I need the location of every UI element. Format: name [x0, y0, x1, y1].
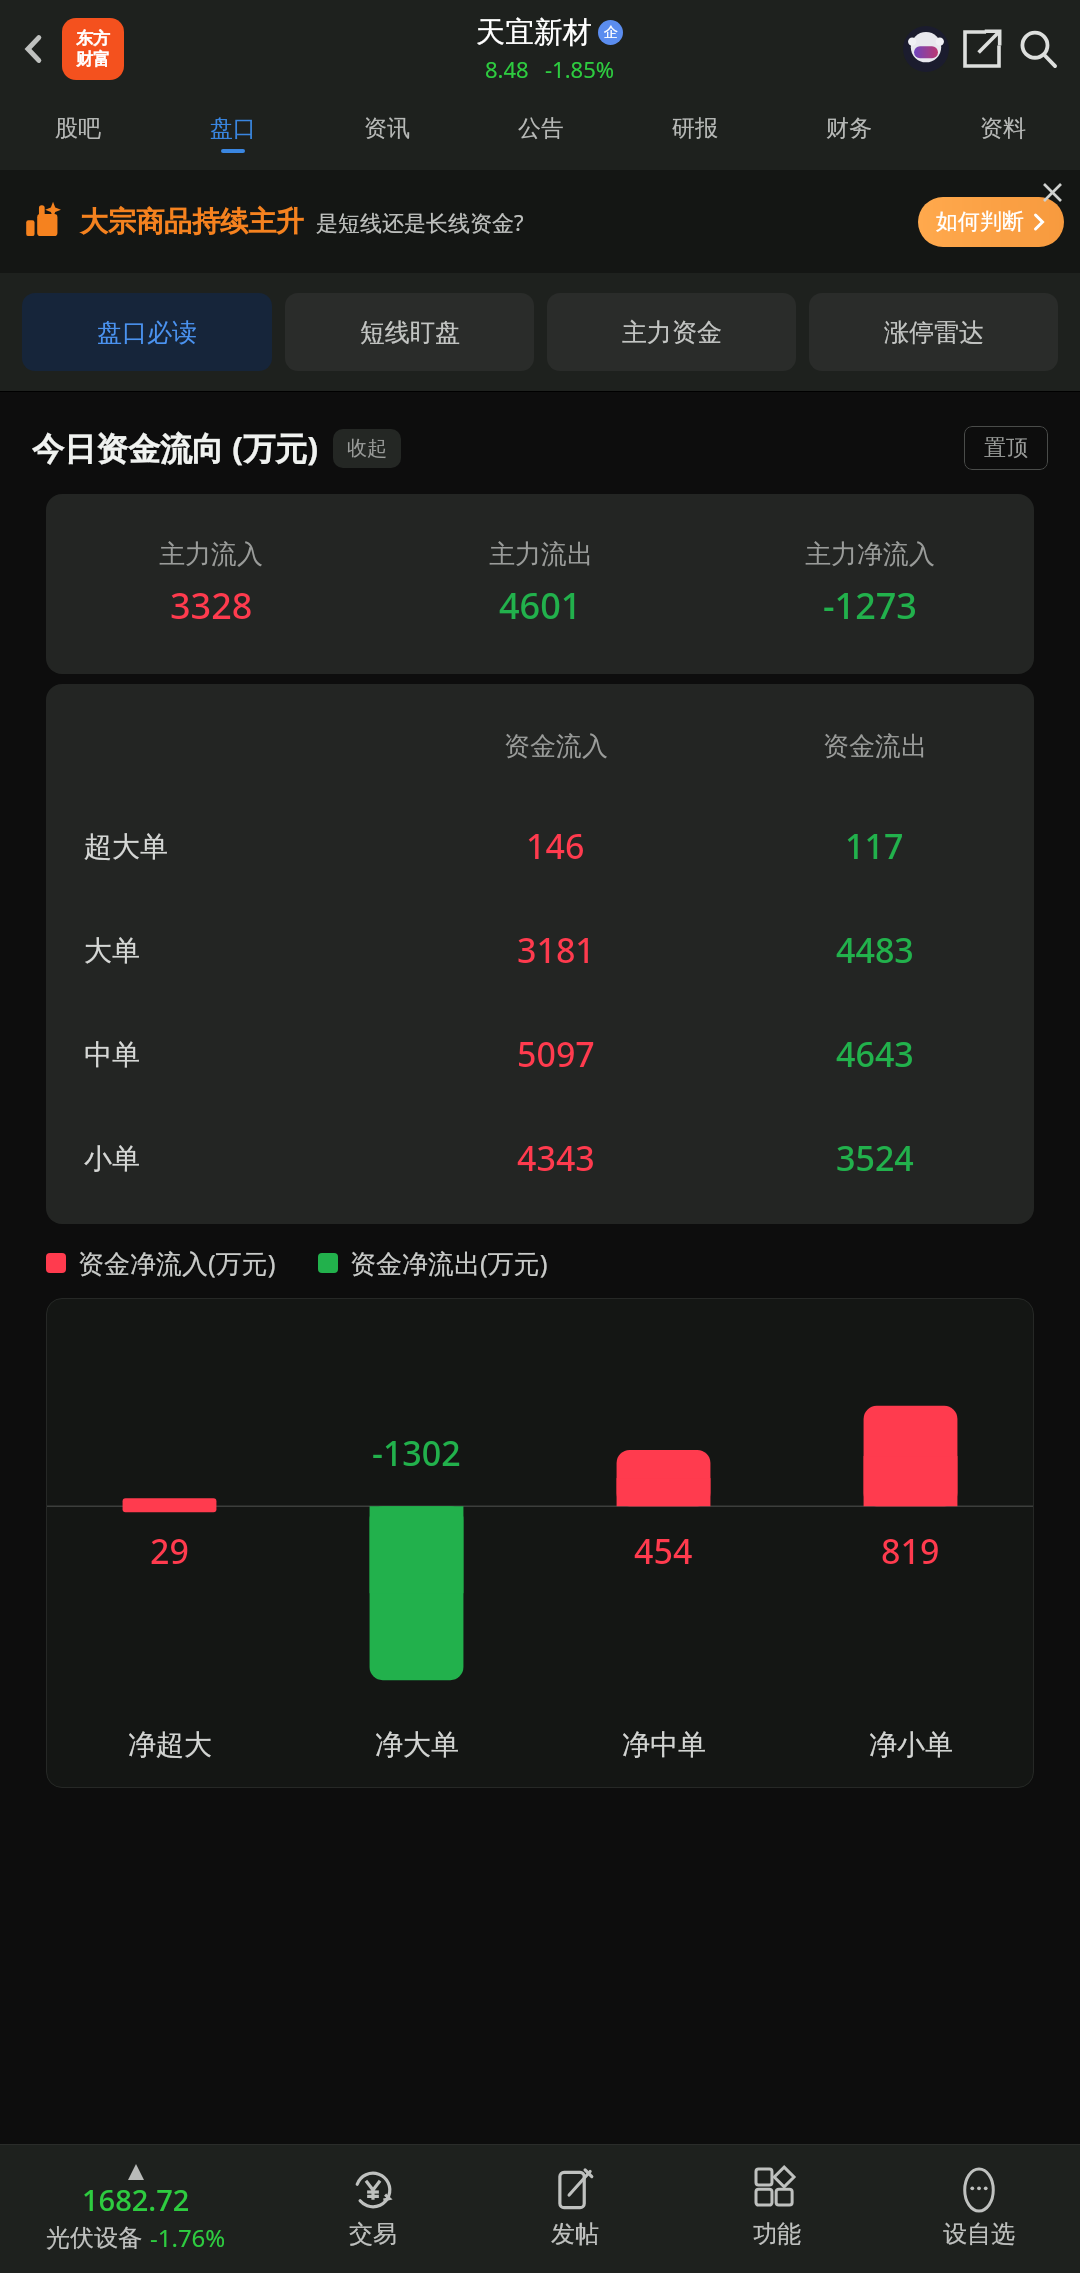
- staticText: 8.48: [485, 54, 529, 84]
- staticText: 净中单: [622, 1727, 706, 1762]
- staticText: -1.76%: [150, 2221, 226, 2254]
- staticText: 146: [526, 823, 585, 869]
- staticText: 资讯: [364, 114, 410, 143]
- staticText: 主力流出: [489, 538, 593, 571]
- staticText: 大单: [84, 933, 140, 968]
- button[interactable]: 盘口必读: [22, 293, 272, 371]
- button[interactable]: 设自选: [878, 2145, 1080, 2273]
- button[interactable]: 交易: [272, 2145, 474, 2273]
- staticText: 5097: [517, 1031, 595, 1077]
- button[interactable]: Back: [6, 21, 62, 77]
- staticText: 是短线还是长线资金?: [316, 207, 524, 237]
- staticText: 盘口必读: [97, 317, 197, 348]
- staticText: 净大单: [375, 1727, 459, 1762]
- button[interactable]: Search: [1010, 21, 1066, 77]
- staticText: 东方: [76, 28, 110, 49]
- button[interactable]: 涨停雷达: [809, 293, 1058, 371]
- button[interactable]: AI assistant: [898, 21, 954, 77]
- staticText: 超大单: [84, 829, 168, 864]
- staticText: 今日资金流向 (万元): [32, 426, 319, 470]
- staticText: 4483: [836, 927, 914, 973]
- staticText: 净小单: [869, 1727, 953, 1762]
- button[interactable]: Close ad: [1032, 172, 1072, 212]
- button[interactable]: 研报: [618, 97, 772, 170]
- button[interactable]: 收起: [333, 429, 401, 468]
- staticText: 财富: [76, 49, 110, 70]
- staticText: 财务: [826, 114, 872, 143]
- staticText: 研报: [672, 114, 718, 143]
- staticText: 设自选: [943, 2219, 1015, 2249]
- staticText: 短线盯盘: [360, 317, 460, 348]
- staticText: 中单: [84, 1037, 140, 1072]
- button[interactable]: 1682.72: [0, 2145, 272, 2273]
- staticText: 企: [604, 24, 618, 42]
- staticText: 盘口: [210, 114, 256, 143]
- staticText: 如何判断: [936, 208, 1024, 236]
- staticText: 大宗商品持续主升: [80, 204, 304, 239]
- button[interactable]: 发帖: [474, 2145, 676, 2273]
- staticText: 4343: [517, 1135, 595, 1181]
- button[interactable]: -1302: [46, 1298, 1034, 1788]
- staticText: 1682.72: [82, 2180, 190, 2219]
- button[interactable]: Share: [954, 21, 1010, 77]
- staticText: 4643: [836, 1031, 914, 1077]
- staticText: 资金流出: [823, 730, 927, 763]
- staticText: 主力流入: [159, 538, 263, 571]
- staticText: 收起: [347, 436, 387, 461]
- staticText: 资金流入: [504, 730, 608, 763]
- staticText: 净超大: [128, 1727, 212, 1762]
- staticText: 置顶: [984, 434, 1028, 462]
- button[interactable]: 东方财富: [62, 18, 124, 80]
- button[interactable]: 公告: [464, 97, 618, 170]
- button[interactable]: 短线盯盘: [285, 293, 534, 371]
- button[interactable]: 资讯: [310, 97, 464, 170]
- button[interactable]: 资料: [926, 97, 1080, 170]
- staticText: 主力净流入: [805, 538, 935, 571]
- staticText: 资料: [980, 114, 1026, 143]
- staticText: 3524: [836, 1135, 914, 1181]
- staticText: 公告: [518, 114, 564, 143]
- button[interactable]: 盘口: [155, 97, 310, 170]
- staticText: 功能: [753, 2219, 801, 2249]
- button[interactable]: 股吧: [0, 97, 155, 170]
- staticText: 3181: [517, 927, 595, 973]
- staticText: -1.85%: [545, 54, 615, 84]
- button[interactable]: 置顶: [964, 426, 1048, 470]
- button[interactable]: 主力资金: [547, 293, 796, 371]
- button[interactable]: 主力流入: [46, 494, 1034, 674]
- staticText: 涨停雷达: [884, 317, 984, 348]
- staticText: 资金净流出(万元): [350, 1245, 548, 1281]
- button[interactable]: 财务: [772, 97, 926, 170]
- button[interactable]: 资金流入: [46, 684, 1034, 1224]
- staticText: 天宜新材: [476, 14, 592, 51]
- staticText: 交易: [349, 2219, 397, 2249]
- staticText: 4601: [499, 581, 582, 630]
- staticText: 819: [881, 1528, 940, 1574]
- staticText: 股吧: [55, 114, 101, 143]
- staticText: 3328: [170, 581, 253, 630]
- staticText: 454: [634, 1528, 693, 1574]
- staticText: -1302: [372, 1430, 461, 1476]
- staticText: 资金净流入(万元): [78, 1245, 276, 1281]
- staticText: -1273: [823, 581, 917, 630]
- staticText: 光伏设备: [46, 2223, 142, 2253]
- staticText: 主力资金: [622, 317, 722, 348]
- button[interactable]: 功能: [676, 2145, 878, 2273]
- button[interactable]: 如何判断: [918, 197, 1064, 247]
- staticText: 小单: [84, 1141, 140, 1176]
- staticText: 发帖: [551, 2219, 599, 2249]
- staticText: 29: [150, 1528, 189, 1574]
- staticText: 117: [845, 823, 904, 869]
